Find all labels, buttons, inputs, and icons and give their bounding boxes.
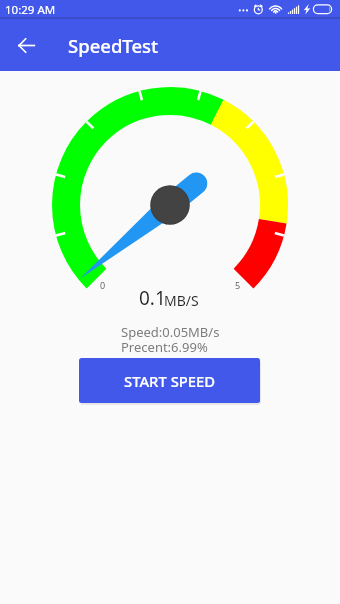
staticText: SpeedTest xyxy=(68,33,159,58)
staticText: MB/S xyxy=(164,291,199,310)
staticText: 0 xyxy=(100,279,106,291)
staticText: 5 xyxy=(235,279,241,291)
staticText: 10:29 AM xyxy=(5,2,56,18)
staticText: Precent:6.99% xyxy=(121,338,208,356)
staticText: 0.1 xyxy=(139,285,166,311)
staticText: START SPEED xyxy=(124,371,216,391)
button[interactable]: Back xyxy=(10,29,43,62)
button[interactable]: START SPEED xyxy=(79,358,260,403)
staticText: Speed:0.05MB/s xyxy=(121,323,220,341)
